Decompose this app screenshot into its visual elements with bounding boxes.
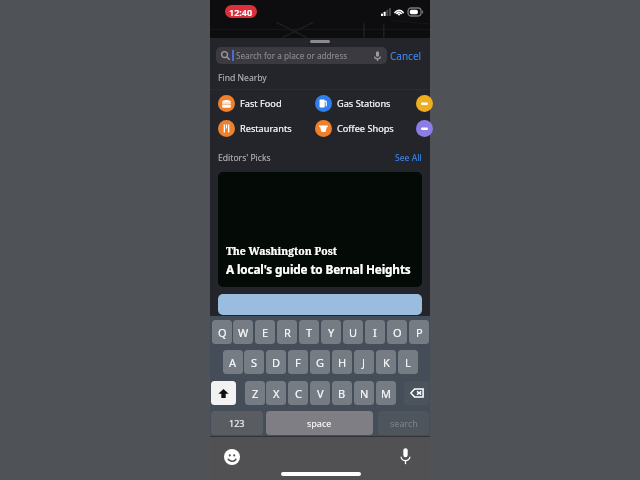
staticText: A	[229, 355, 237, 370]
button[interactable]: Backspace	[404, 381, 429, 405]
staticText: P	[416, 325, 423, 340]
button[interactable]: D	[266, 350, 286, 374]
button[interactable]: space	[266, 411, 373, 435]
staticText: A local's guide to Bernal Heights	[226, 261, 411, 277]
staticText: B	[338, 386, 346, 401]
staticText: 12:40	[229, 6, 253, 18]
button[interactable]: W	[233, 320, 253, 344]
button[interactable]: X	[266, 381, 286, 405]
staticText: The Washington Post	[226, 244, 337, 258]
staticText: R	[284, 325, 291, 340]
button[interactable]: Gas Stations	[315, 95, 391, 112]
staticText: X	[273, 386, 280, 401]
staticText: Fast Food	[240, 97, 282, 110]
button[interactable]: E	[255, 320, 275, 344]
button[interactable]: 123	[211, 411, 263, 435]
button[interactable]: G	[310, 350, 330, 374]
button[interactable]: The Washington Post	[218, 172, 422, 287]
staticText: Z	[252, 386, 259, 401]
staticText: C	[295, 386, 302, 401]
staticText: 123	[229, 417, 245, 429]
button[interactable]: L	[398, 350, 418, 374]
staticText: F	[295, 355, 301, 370]
button[interactable]: R	[277, 320, 297, 344]
staticText: W	[238, 325, 249, 340]
button[interactable]: O	[387, 320, 407, 344]
button[interactable]: search	[378, 411, 429, 435]
button[interactable]: B	[332, 381, 352, 405]
button[interactable]: I	[365, 320, 385, 344]
staticText: J	[362, 355, 366, 370]
staticText: N	[360, 386, 369, 401]
button[interactable]: Hotels	[416, 95, 433, 112]
button[interactable]: Cancel	[389, 47, 423, 64]
button[interactable]: K	[376, 350, 396, 374]
staticText: T	[306, 325, 313, 340]
staticText: Cancel	[390, 49, 422, 63]
staticText: See All	[395, 152, 422, 164]
button[interactable]: N	[354, 381, 374, 405]
staticText: D	[272, 355, 281, 370]
button[interactable]: T	[299, 320, 319, 344]
staticText: U	[349, 325, 358, 340]
button[interactable]: S	[244, 350, 264, 374]
staticText: S	[251, 355, 258, 370]
staticText: M	[381, 386, 391, 401]
staticText: space	[307, 417, 332, 429]
button[interactable]: Z	[245, 381, 265, 405]
staticText: V	[317, 386, 324, 401]
button[interactable]: See All	[395, 152, 422, 164]
staticText: Coffee Shops	[337, 122, 394, 135]
staticText: K	[383, 355, 390, 370]
staticText: H	[338, 355, 347, 370]
button[interactable]: H	[332, 350, 352, 374]
button[interactable]: Shopping	[416, 120, 433, 137]
button[interactable]: Shift	[211, 381, 236, 405]
button[interactable]: Dictation	[400, 448, 411, 465]
button[interactable]: A	[223, 350, 243, 374]
staticText: Editors' Picks	[218, 152, 271, 164]
button[interactable]: V	[310, 381, 330, 405]
button[interactable]: M	[376, 381, 396, 405]
staticText: Q	[218, 325, 227, 340]
button[interactable]: Q	[212, 320, 232, 344]
staticText: Search for a place or address	[236, 50, 348, 61]
staticText: E	[262, 325, 269, 340]
button[interactable]: Fast Food	[218, 95, 282, 112]
button[interactable]: Next editors' pick	[218, 294, 422, 315]
button[interactable]: U	[343, 320, 363, 344]
button[interactable]: J	[354, 350, 374, 374]
button[interactable]: Search for a place or address	[216, 47, 387, 64]
button[interactable]: C	[288, 381, 308, 405]
button[interactable]: Y	[321, 320, 341, 344]
staticText: G	[316, 355, 325, 370]
staticText: I	[373, 325, 377, 340]
staticText: Find Nearby	[218, 72, 267, 84]
button[interactable]: Emoji keyboard	[224, 449, 240, 465]
staticText: Y	[328, 325, 335, 340]
staticText: Gas Stations	[337, 97, 391, 110]
staticText: search	[390, 417, 418, 429]
staticText: Restaurants	[240, 122, 292, 135]
button[interactable]: F	[288, 350, 308, 374]
button[interactable]: Coffee Shops	[315, 120, 394, 137]
button[interactable]: P	[409, 320, 429, 344]
button[interactable]: Restaurants	[218, 120, 292, 137]
button[interactable]: Voice search	[373, 50, 382, 62]
staticText: O	[393, 325, 402, 340]
staticText: L	[405, 355, 411, 370]
